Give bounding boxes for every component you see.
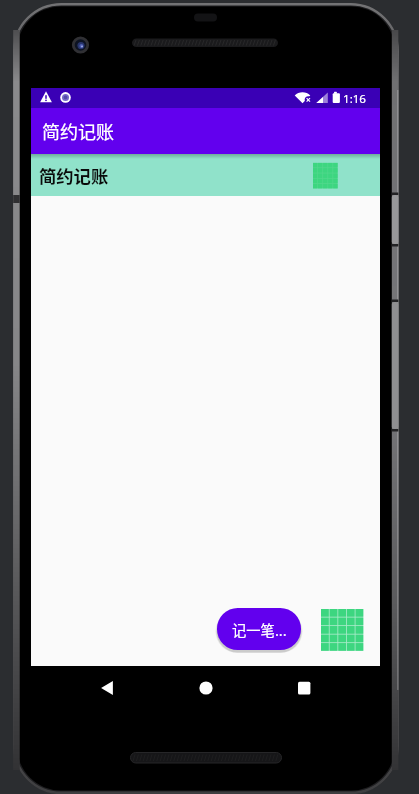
- button[interactable]: [192, 673, 220, 701]
- button[interactable]: [93, 673, 121, 701]
- button[interactable]: [290, 673, 318, 701]
- button[interactable]: [321, 609, 364, 651]
- staticText: 简约记账: [39, 163, 109, 188]
- button[interactable]: 简约记账: [31, 154, 380, 196]
- staticText: 记一笔...: [232, 619, 287, 640]
- button[interactable]: 记一笔...: [217, 608, 301, 650]
- staticText: 简约记账: [42, 118, 114, 144]
- staticText: 1:16: [343, 91, 367, 107]
